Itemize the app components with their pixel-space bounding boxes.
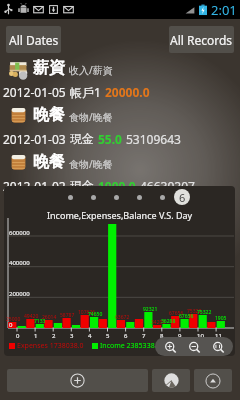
- staticText: 107626: [78, 309, 96, 316]
- staticText: 1000.0: [98, 178, 136, 194]
- button[interactable]: More: [194, 369, 232, 392]
- staticText: 53109643: [126, 131, 181, 147]
- staticText: 7133: [34, 318, 46, 325]
- staticText: 2:01: [211, 1, 237, 19]
- staticText: 2: [52, 332, 56, 340]
- staticText: 400000: [9, 259, 30, 267]
- staticText: 600000: [9, 229, 30, 237]
- staticText: Income 2385338.0: [100, 341, 161, 351]
- button[interactable]: Zoom out: [182, 338, 206, 356]
- staticText: 34200: [151, 319, 166, 326]
- staticText: Income,Expenses,Balance V.S. Day: [47, 209, 193, 221]
- staticText: 食物/晚餐: [69, 110, 113, 124]
- staticText: 6: [179, 190, 186, 205]
- staticText: 92321: [143, 306, 158, 313]
- staticText: 4: [88, 332, 92, 340]
- staticText: 49420: [24, 313, 39, 320]
- staticText: 10: [197, 332, 204, 340]
- button[interactable]: Charts: [152, 369, 190, 392]
- staticText: 67656: [169, 310, 184, 317]
- staticText: 現金: [70, 131, 94, 146]
- staticText: 58787: [60, 312, 75, 319]
- staticText: 0: [9, 321, 13, 329]
- staticText: 收入/薪資: [69, 63, 113, 77]
- staticText: 26014: [42, 314, 57, 321]
- staticText: 74650: [88, 311, 103, 318]
- staticText: 2012-01-05: [3, 84, 66, 100]
- staticText: 現金: [70, 178, 94, 193]
- button[interactable]: All Records: [169, 26, 234, 53]
- staticText: 9: [178, 332, 182, 340]
- staticText: 6: [124, 332, 128, 340]
- staticText: 2012-01-02: [3, 178, 66, 194]
- button[interactable]: 晚餐: [0, 102, 240, 149]
- staticText: 1905: [215, 315, 227, 322]
- staticText: 75322: [187, 308, 202, 315]
- button[interactable]: 晚餐: [0, 149, 240, 196]
- staticText: 5: [106, 332, 110, 340]
- staticText: 帳戶1: [70, 84, 101, 100]
- staticText: 67656: [179, 313, 194, 320]
- staticText: 3: [70, 332, 74, 340]
- staticText: 36288: [161, 318, 176, 325]
- staticText: 0: [16, 332, 20, 340]
- staticText: 8: [160, 332, 164, 340]
- staticText: 晚餐: [33, 105, 65, 125]
- staticText: 晚餐: [33, 152, 65, 172]
- staticText: All Records: [170, 32, 233, 48]
- staticText: 200000: [9, 290, 30, 298]
- button[interactable]: Zoom in: [158, 338, 182, 356]
- staticText: 2012-01-03: [3, 131, 66, 147]
- staticText: 25000: [6, 316, 21, 323]
- staticText: 46630207: [140, 178, 195, 194]
- staticText: 63672: [115, 314, 130, 321]
- staticText: 55.0: [98, 131, 122, 147]
- staticText: 食物/晚餐: [69, 157, 113, 171]
- button[interactable]: All Dates: [6, 26, 61, 53]
- staticText: 20000.0: [105, 84, 150, 100]
- staticText: All Dates: [9, 32, 59, 48]
- staticText: 7: [142, 332, 146, 340]
- staticText: 11: [215, 332, 222, 340]
- staticText: 薪資: [33, 58, 65, 78]
- button[interactable]: Add record: [7, 369, 148, 392]
- button[interactable]: 薪資: [0, 55, 240, 102]
- button[interactable]: Reset zoom: [206, 338, 230, 356]
- staticText: Expenses 1738038.0: [17, 341, 84, 351]
- staticText: 1: [34, 332, 38, 340]
- staticText: 75322: [197, 309, 212, 316]
